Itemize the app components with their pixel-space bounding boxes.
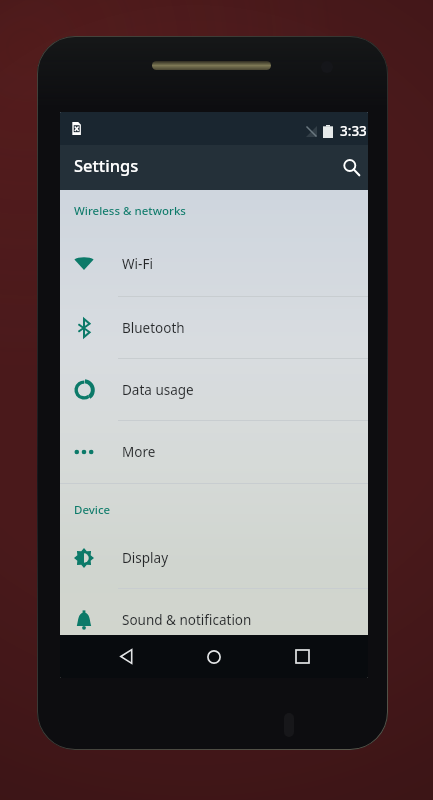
staticText: Settings <box>74 154 139 176</box>
staticText: Wireless & networks <box>74 203 186 219</box>
button[interactable]: Display <box>60 527 368 588</box>
button[interactable]: More <box>60 421 368 483</box>
button[interactable]: Device <box>60 484 368 527</box>
staticText: 3:33 <box>340 122 367 140</box>
button[interactable]: Wi-Fi <box>60 232 368 296</box>
button[interactable]: Data usage <box>60 359 368 420</box>
button[interactable]: Back <box>104 635 148 678</box>
button[interactable]: Wireless & networks <box>60 190 368 232</box>
button[interactable]: Home <box>192 635 236 678</box>
staticText: Display <box>122 549 169 567</box>
staticText: Data usage <box>122 381 194 399</box>
staticText: Bluetooth <box>122 319 185 337</box>
staticText: Sound & notification <box>122 611 252 629</box>
button[interactable]: Search <box>332 148 368 186</box>
staticText: Device <box>74 502 111 518</box>
button[interactable]: Recents <box>280 635 324 678</box>
staticText: More <box>122 443 156 461</box>
button[interactable]: Bluetooth <box>60 297 368 358</box>
button[interactable]: Sound & notification <box>60 589 368 635</box>
staticText: Wi-Fi <box>122 255 153 273</box>
